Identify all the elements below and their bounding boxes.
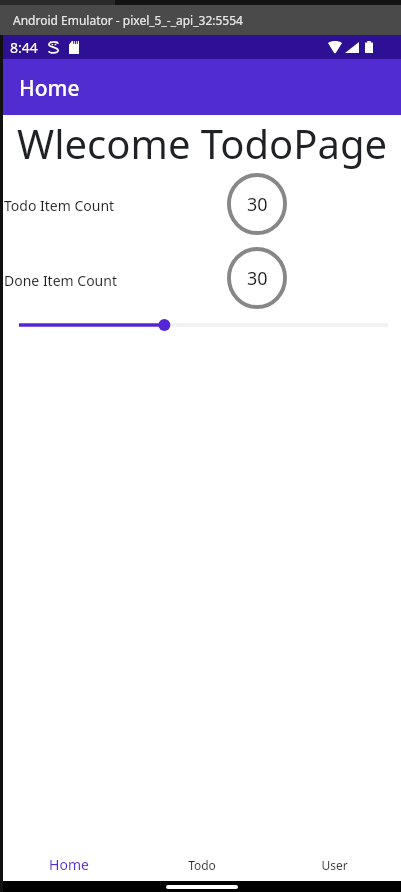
- button[interactable]: User: [268, 845, 401, 881]
- staticText: Todo: [188, 857, 216, 873]
- staticText: User: [321, 857, 348, 873]
- staticText: Todo Item Count: [4, 196, 115, 215]
- staticText: Home: [49, 855, 89, 874]
- staticText: Android Emulator - pixel_5_-_api_32:5554: [13, 12, 243, 28]
- button[interactable]: Progress slider: [3, 313, 401, 337]
- button[interactable]: Home: [3, 845, 135, 881]
- button[interactable]: Home: [3, 59, 401, 115]
- staticText: Home: [19, 74, 80, 103]
- staticText: 8:44: [10, 38, 38, 57]
- staticText: Done Item Count: [4, 271, 117, 290]
- staticText: 30: [247, 266, 268, 291]
- staticText: Wlecome TodoPage: [17, 116, 401, 170]
- staticText: 30: [247, 192, 268, 217]
- button[interactable]: Todo: [135, 845, 268, 881]
